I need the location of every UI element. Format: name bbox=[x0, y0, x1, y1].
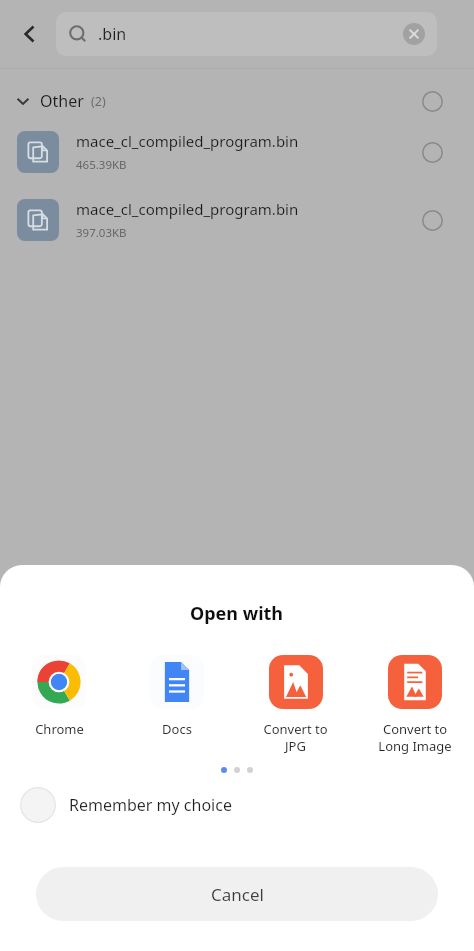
button[interactable]: Convert to JPG bbox=[236, 655, 355, 755]
button[interactable]: Select bbox=[414, 202, 450, 238]
button[interactable]: Select bbox=[414, 134, 450, 170]
staticText: (2) bbox=[91, 93, 106, 110]
button[interactable]: mace_cl_compiled_program.bin bbox=[0, 191, 474, 249]
staticText: Chrome bbox=[35, 720, 84, 738]
staticText: 397.03KB bbox=[76, 225, 127, 241]
button[interactable]: Other bbox=[0, 79, 474, 123]
staticText: 465.39KB bbox=[76, 157, 127, 173]
staticText: Docs bbox=[162, 720, 192, 738]
button[interactable]: Cancel bbox=[36, 867, 438, 921]
staticText: mace_cl_compiled_program.bin bbox=[76, 131, 299, 151]
staticText: Open with bbox=[190, 601, 284, 626]
staticText: Other bbox=[40, 90, 84, 112]
staticText: .bin bbox=[98, 23, 127, 45]
staticText: Convert to Long Image bbox=[378, 720, 452, 755]
button[interactable]: Select bbox=[414, 83, 450, 119]
staticText: Cancel bbox=[211, 883, 264, 906]
button[interactable]: Docs bbox=[118, 655, 236, 738]
button[interactable]: mace_cl_compiled_program.bin bbox=[0, 123, 474, 181]
button[interactable]: .bin bbox=[56, 12, 437, 56]
button[interactable]: Remember my choice bbox=[0, 782, 474, 828]
button[interactable]: Chrome bbox=[0, 655, 118, 738]
staticText: Remember my choice bbox=[69, 794, 232, 816]
button[interactable]: Convert to Long Image bbox=[355, 655, 474, 755]
staticText: Convert to JPG bbox=[263, 720, 328, 755]
staticText: mace_cl_compiled_program.bin bbox=[76, 199, 299, 219]
button[interactable]: Clear search bbox=[397, 17, 431, 51]
button[interactable]: Back bbox=[10, 14, 50, 54]
